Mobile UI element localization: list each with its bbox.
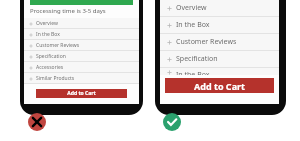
button[interactable]: Correct example	[163, 113, 181, 131]
staticText: Customer Reviews	[176, 37, 237, 47]
staticText: Overview	[176, 3, 207, 13]
staticText: Specification	[36, 53, 66, 60]
button[interactable]: Overview	[24, 18, 139, 29]
staticText: Add to Cart	[67, 90, 96, 97]
button[interactable]: Overview	[160, 0, 279, 17]
button[interactable]: In the Box	[160, 17, 279, 34]
button[interactable]: Similar Products	[24, 73, 139, 84]
button[interactable]: Add to Cart	[165, 78, 274, 93]
button[interactable]: Accessories	[24, 62, 139, 73]
staticText: Overview	[36, 20, 58, 27]
button[interactable]: Specification	[160, 51, 279, 68]
staticText: In the Box	[36, 31, 60, 38]
staticText: Processing time is 3-5 days	[30, 7, 106, 15]
button[interactable]: Incorrect example	[28, 113, 46, 131]
staticText: Specification	[176, 54, 218, 64]
staticText: Accessories	[36, 64, 64, 71]
button[interactable]: Customer Reviews	[160, 34, 279, 51]
staticText: Similar Products	[36, 75, 75, 82]
staticText: In the Box	[176, 70, 210, 75]
staticText: Add to Cart	[194, 80, 245, 92]
button[interactable]: Add to Cart	[36, 89, 127, 98]
staticText: Customer Reviews	[36, 42, 80, 49]
staticText: In the Box	[176, 20, 210, 30]
button[interactable]: In the Box	[24, 29, 139, 40]
button[interactable]: Customer Reviews	[24, 40, 139, 51]
button[interactable]: Specification	[24, 51, 139, 62]
